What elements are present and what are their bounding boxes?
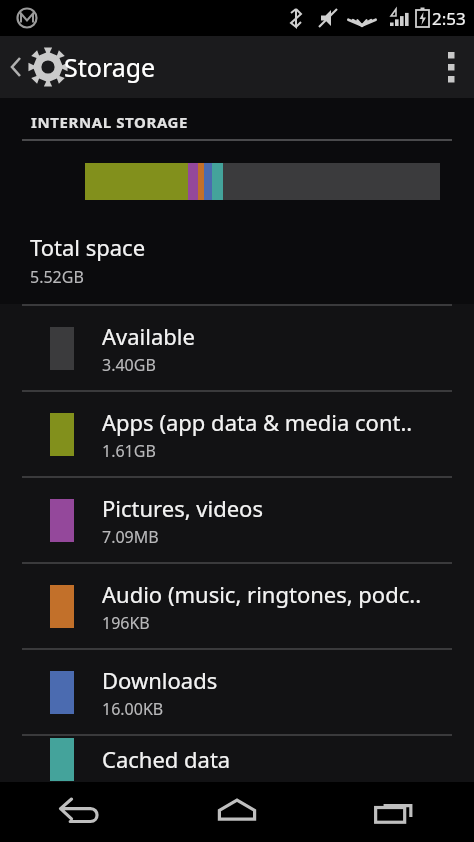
staticText: 3.40GB	[102, 354, 156, 376]
button[interactable]: Cached data	[0, 736, 474, 782]
staticText: Downloads	[102, 665, 218, 695]
button[interactable]: Home	[158, 782, 316, 842]
button[interactable]: Apps (app data & media cont..	[0, 392, 474, 476]
staticText: Cached data	[102, 744, 231, 774]
button[interactable]: Pictures, videos	[0, 478, 474, 562]
staticText: 196KB	[102, 612, 150, 634]
button[interactable]: Recent apps	[316, 782, 474, 842]
staticText: INTERNAL STORAGE	[31, 112, 189, 132]
staticText: 5.52GB	[30, 266, 84, 288]
button[interactable]: Downloads	[0, 650, 474, 734]
staticText: 2:53	[432, 7, 466, 30]
staticText: Pictures, videos	[102, 493, 263, 523]
button[interactable]: More options	[428, 36, 474, 98]
button[interactable]: Total space	[0, 228, 474, 304]
staticText: 1.61GB	[102, 440, 156, 462]
staticText: Audio (music, ringtones, podc..	[102, 579, 422, 609]
staticText: Available	[102, 321, 195, 351]
staticText: Apps (app data & media cont..	[102, 407, 413, 437]
other: Navigate up, Storage	[6, 36, 64, 98]
staticText: Storage	[64, 50, 156, 84]
button[interactable]: Audio (music, ringtones, podc..	[0, 564, 474, 648]
button[interactable]: Navigate up, Storage	[0, 36, 162, 98]
staticText: 7.09MB	[102, 526, 159, 548]
staticText: Total space	[30, 232, 146, 262]
staticText: 16.00KB	[102, 698, 164, 720]
button[interactable]: Back	[0, 782, 158, 842]
button[interactable]: Available	[0, 306, 474, 390]
